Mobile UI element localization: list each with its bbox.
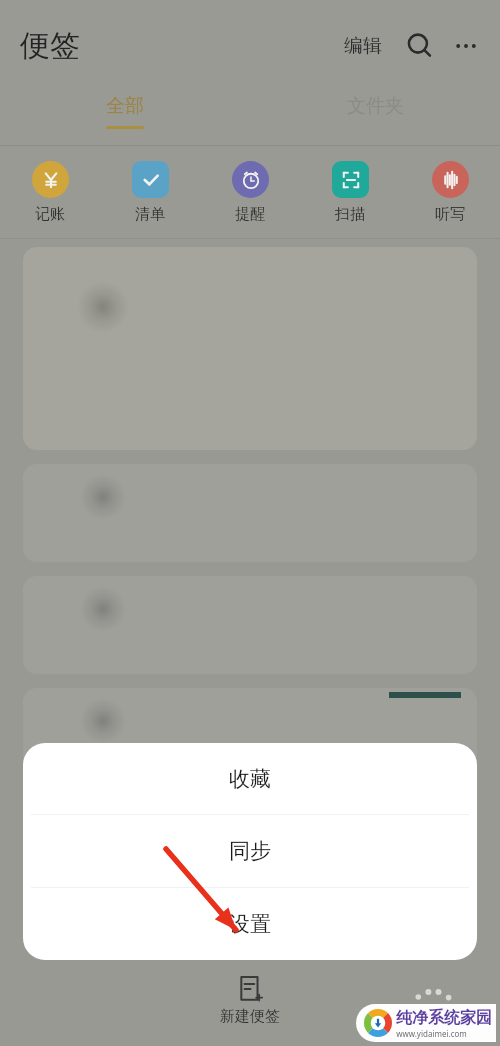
staticText: 编辑: [344, 34, 382, 58]
staticText: 收藏: [229, 766, 271, 792]
staticText: 清单: [135, 205, 165, 224]
staticText: 设置: [229, 911, 271, 937]
staticText: 纯净系统家园: [396, 1008, 492, 1028]
staticText: 提醒: [235, 205, 265, 224]
button[interactable]: 设置: [23, 888, 477, 960]
button[interactable]: 收藏: [23, 743, 477, 814]
button[interactable]: 全部: [0, 88, 250, 146]
staticText: 听写: [435, 205, 465, 224]
button[interactable]: 提醒: [200, 146, 300, 238]
staticText: 记账: [35, 205, 65, 224]
button[interactable]: 同步: [23, 815, 477, 887]
button[interactable]: 编辑: [340, 28, 386, 64]
staticText: www.yidaimei.com: [396, 1028, 467, 1039]
button[interactable]: 记账: [0, 146, 100, 238]
button[interactable]: 新建便签: [208, 973, 292, 1029]
button[interactable]: 扫描: [300, 146, 400, 238]
staticText: 同步: [229, 838, 271, 864]
staticText: 扫描: [335, 205, 365, 224]
staticText: 便签: [20, 27, 80, 65]
button[interactable]: 听写: [400, 146, 500, 238]
button[interactable]: More options: [446, 26, 486, 66]
button[interactable]: 清单: [100, 146, 200, 238]
button[interactable]: [23, 688, 477, 786]
staticText: 全部: [106, 94, 144, 118]
staticText: 文件夹: [347, 94, 404, 118]
staticText: 新建便签: [220, 1007, 280, 1026]
button[interactable]: Search: [400, 26, 440, 66]
